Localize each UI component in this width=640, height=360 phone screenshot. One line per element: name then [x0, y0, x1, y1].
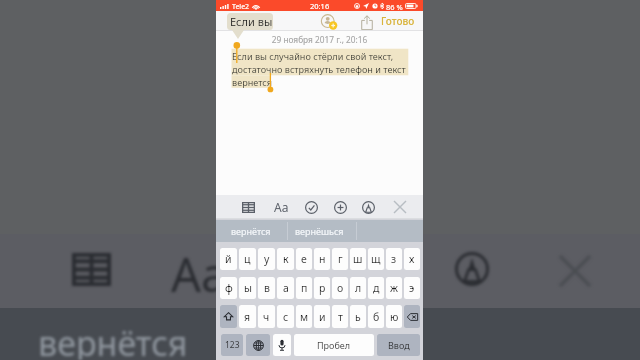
- button[interactable]: к: [277, 248, 294, 270]
- staticText: е: [301, 252, 307, 266]
- button[interactable]: Close keyboard: [390, 195, 410, 219]
- button[interactable]: Table: [238, 195, 258, 219]
- button[interactable]: вернёшься: [285, 220, 354, 242]
- staticText: й: [225, 252, 232, 266]
- button[interactable]: Change language: [246, 334, 270, 356]
- staticText: х: [409, 252, 415, 266]
- staticText: а: [283, 281, 289, 295]
- staticText: Aa: [274, 199, 289, 215]
- staticText: ч: [263, 310, 270, 324]
- button[interactable]: Add attachment: [330, 195, 350, 219]
- button[interactable]: п: [296, 277, 312, 299]
- staticText: Tele2: [232, 2, 250, 12]
- staticText: у: [264, 252, 270, 266]
- staticText: б: [373, 310, 380, 324]
- button[interactable]: Checklist: [301, 195, 321, 219]
- staticText: Если вы случайно стёрли свой текст,: [232, 50, 394, 62]
- staticText: п: [301, 281, 308, 295]
- button[interactable]: г: [332, 248, 348, 270]
- button[interactable]: Markup: [358, 195, 378, 219]
- staticText: 86 %: [386, 2, 403, 12]
- staticText: Готово: [381, 14, 415, 28]
- button[interactable]: Ввод: [377, 334, 420, 356]
- button[interactable]: у: [258, 248, 275, 270]
- staticText: р: [319, 281, 326, 295]
- button[interactable]: Share: [359, 15, 374, 30]
- staticText: 29 ноября 2017 г., 20:16: [216, 34, 423, 45]
- staticText: в: [264, 281, 270, 295]
- button[interactable]: Numbers: [221, 334, 243, 356]
- button[interactable]: м: [296, 305, 312, 328]
- button[interactable]: ы: [239, 277, 256, 299]
- button[interactable]: в: [258, 277, 275, 299]
- staticText: ж: [390, 281, 398, 295]
- button[interactable]: ц: [239, 248, 256, 270]
- staticText: Если вы: [230, 14, 273, 29]
- staticText: достаточно встряхнуть телефон и текст: [232, 63, 406, 75]
- staticText: Aa: [171, 242, 228, 306]
- button[interactable]: й: [220, 248, 237, 270]
- staticText: к: [283, 252, 289, 266]
- button[interactable]: Готово: [380, 11, 416, 31]
- button[interactable]: Dictation: [273, 334, 291, 356]
- staticText: Пробел: [317, 339, 351, 351]
- button[interactable]: ю: [386, 305, 402, 328]
- staticText: ь: [355, 310, 361, 324]
- button[interactable]: о: [332, 277, 348, 299]
- staticText: вернётся: [231, 225, 271, 237]
- button[interactable]: е: [296, 248, 312, 270]
- button[interactable]: л: [350, 277, 366, 299]
- button[interactable]: а: [277, 277, 294, 299]
- button[interactable]: ж: [386, 277, 402, 299]
- button[interactable]: ш: [350, 248, 366, 270]
- staticText: 20:16: [310, 1, 330, 11]
- button[interactable]: и: [314, 305, 330, 328]
- staticText: с: [283, 310, 289, 324]
- button[interactable]: т: [332, 305, 348, 328]
- staticText: щ: [371, 252, 381, 266]
- button[interactable]: с: [277, 305, 294, 328]
- staticText: ю: [390, 310, 399, 324]
- staticText: г: [338, 252, 343, 266]
- button[interactable]: Shift: [220, 305, 237, 328]
- button[interactable]: Add people: [321, 14, 337, 30]
- staticText: ц: [244, 252, 251, 266]
- staticText: ш: [353, 252, 363, 266]
- staticText: з: [391, 252, 397, 266]
- button[interactable]: щ: [368, 248, 384, 270]
- staticText: Ввод: [388, 339, 410, 351]
- staticText: д: [373, 281, 380, 295]
- staticText: ф: [225, 281, 233, 295]
- staticText: э: [409, 281, 415, 295]
- button[interactable]: ф: [220, 277, 237, 299]
- staticText: и: [319, 310, 326, 324]
- button[interactable]: Пробел: [294, 334, 374, 356]
- button[interactable]: я: [239, 305, 256, 328]
- staticText: вернется: [232, 76, 272, 88]
- button[interactable]: х: [404, 248, 420, 270]
- staticText: 123: [225, 339, 240, 351]
- staticText: м: [300, 310, 309, 324]
- staticText: ы: [244, 281, 252, 295]
- staticText: вернёшься: [295, 225, 344, 237]
- staticText: л: [355, 281, 362, 295]
- staticText: я: [244, 310, 251, 324]
- button[interactable]: д: [368, 277, 384, 299]
- button[interactable]: з: [386, 248, 402, 270]
- staticText: т: [338, 310, 343, 324]
- button[interactable]: Backspace: [404, 305, 420, 328]
- button[interactable]: ь: [350, 305, 366, 328]
- button[interactable]: Format: [271, 195, 291, 219]
- staticText: вернётся: [38, 320, 188, 360]
- staticText: о: [337, 281, 344, 295]
- button[interactable]: э: [404, 277, 420, 299]
- button[interactable]: б: [368, 305, 384, 328]
- button[interactable]: ч: [258, 305, 275, 328]
- button[interactable]: н: [314, 248, 330, 270]
- button[interactable]: р: [314, 277, 330, 299]
- staticText: н: [319, 252, 326, 266]
- button[interactable]: вернётся: [216, 220, 285, 242]
